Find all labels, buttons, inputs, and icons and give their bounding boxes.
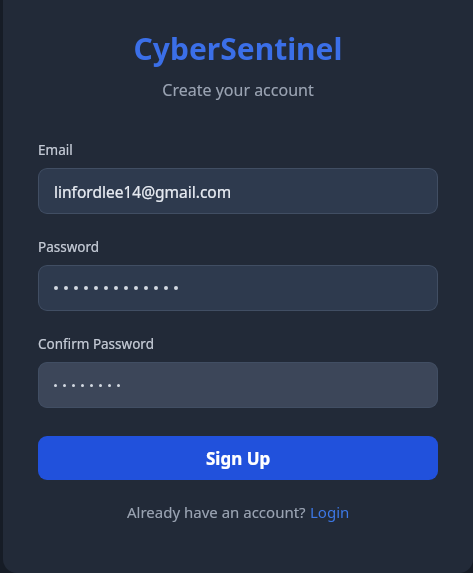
staticText: Create your account [38, 79, 438, 101]
button[interactable]: linfordlee14@gmail.com [38, 168, 438, 214]
staticText: Password [38, 238, 100, 256]
button[interactable]: Sign Up [38, 436, 438, 480]
staticText: Email [38, 141, 73, 159]
staticText: Login [310, 502, 350, 522]
staticText: CyberSentinel [38, 28, 438, 69]
staticText: Already have an account? [127, 502, 310, 522]
staticText: Confirm Password [38, 335, 154, 353]
button[interactable] [38, 265, 438, 311]
button[interactable] [38, 362, 438, 408]
staticText: Sign Up [206, 447, 271, 470]
staticText: linfordlee14@gmail.com [54, 181, 232, 202]
button[interactable]: Login [310, 502, 350, 522]
